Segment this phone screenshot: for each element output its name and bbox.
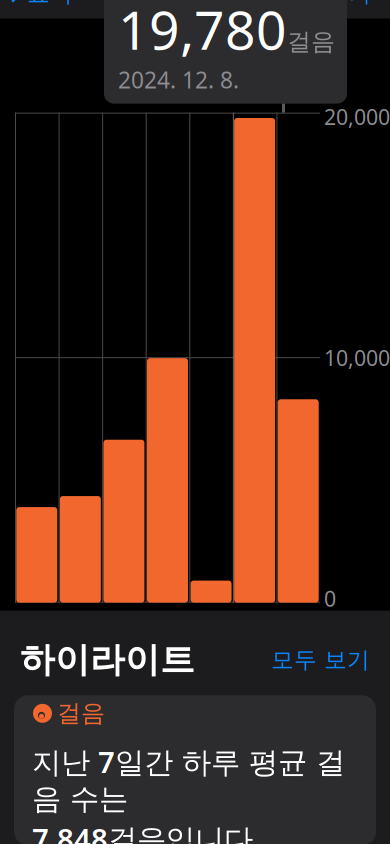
staticText: 모두 보기 [271,646,370,674]
staticText: 걸음 [57,699,105,728]
staticText: 19,780 [118,0,287,64]
staticText: 데이터 추가 [250,0,372,8]
staticText: 20,000 [324,103,390,131]
staticText: 7,848걸음입니다. [32,819,261,844]
staticText: 10,000 [324,343,390,372]
staticText: 0 [324,584,336,613]
staticText: 요약 [27,0,73,8]
button[interactable]: 걸음 [0,681,390,844]
button[interactable]: 추세 [0,661,390,733]
staticText: 2024. 12. 8. [118,64,239,95]
staticText: 계산할 수 없음 [204,683,356,710]
button[interactable]: 데이터 추가 [250,0,390,14]
button[interactable]: 요약 [0,0,73,14]
staticText: 하이라이트 [20,639,195,681]
staticText: 지난 7일간 하루 평균 걸음 수는 [32,742,345,817]
staticText: 추세 [34,683,80,710]
staticText: 걸음 [287,27,335,57]
button[interactable]: 모두 보기 [271,646,370,674]
